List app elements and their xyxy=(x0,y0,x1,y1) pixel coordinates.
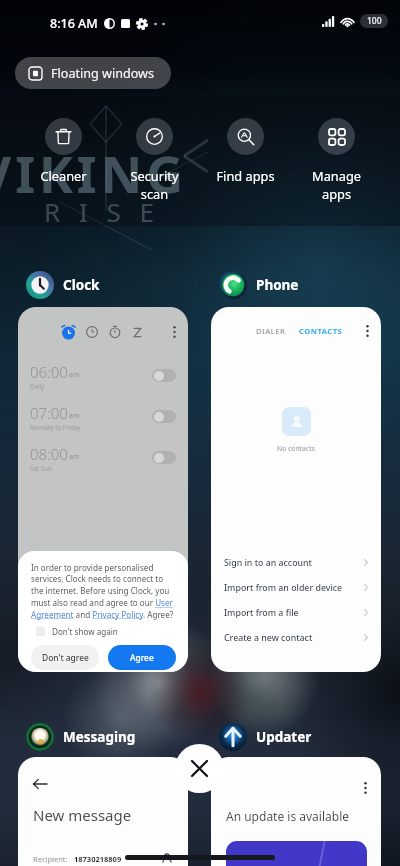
staticText: No contacts xyxy=(277,444,315,453)
button[interactable]: Clock xyxy=(18,270,100,300)
staticText: am xyxy=(69,452,80,462)
staticText: Find apps xyxy=(200,167,291,184)
staticText: Monday to Friday xyxy=(30,423,81,431)
staticText: Cleaner xyxy=(18,167,109,184)
button[interactable]: Sign in to an account xyxy=(211,550,381,575)
button[interactable]: Phone xyxy=(211,270,299,300)
staticText: CONTACTS xyxy=(299,326,343,336)
staticText: An update is available xyxy=(226,808,350,824)
button[interactable]: Import from an older device xyxy=(211,575,381,600)
staticText: 07:00 xyxy=(30,403,68,423)
staticText: Import from a file xyxy=(224,607,299,619)
button[interactable]: An update is available xyxy=(211,757,381,866)
staticText: 06:00 xyxy=(30,362,68,382)
staticText: New message xyxy=(33,805,132,825)
staticText: Daily xyxy=(30,382,45,390)
staticText: R I S E xyxy=(44,194,160,229)
button[interactable]: Security scan xyxy=(109,118,200,203)
staticText: Updater xyxy=(256,728,312,746)
button[interactable]: 06:00 xyxy=(18,307,188,672)
button[interactable]: Messaging xyxy=(18,722,136,752)
button[interactable]: Import from a file xyxy=(211,600,381,625)
staticText: Import from an older device xyxy=(224,582,343,594)
button[interactable]: DIALER xyxy=(211,307,381,672)
staticText: In order to provide personalised service… xyxy=(31,562,176,620)
staticText: VIKING xyxy=(0,138,188,207)
button[interactable]: Manage apps xyxy=(291,118,382,203)
staticText: Security scan xyxy=(109,167,200,203)
button[interactable]: Agree xyxy=(108,645,176,670)
staticText: Don't agree xyxy=(42,652,89,663)
staticText: 18730218809 xyxy=(74,854,122,864)
staticText: 08:00 xyxy=(30,444,68,464)
staticText: DIALER xyxy=(256,326,286,336)
button[interactable]: Clear all recent apps xyxy=(175,744,224,793)
staticText: Sign in to an account xyxy=(224,557,312,569)
staticText: Floating windows xyxy=(51,65,155,82)
button[interactable]: Floating windows xyxy=(15,57,171,89)
staticText: Agree xyxy=(130,652,154,663)
button[interactable]: New message xyxy=(18,757,188,866)
staticText: 100 xyxy=(367,15,382,27)
staticText: Messaging xyxy=(63,728,136,746)
staticText: 8:16 AM xyxy=(50,15,98,32)
button[interactable]: Find apps xyxy=(200,118,291,184)
button[interactable]: Cleaner xyxy=(18,118,109,184)
staticText: Recipient: xyxy=(33,854,68,864)
staticText: Clock xyxy=(63,276,100,294)
button[interactable]: Create a new contact xyxy=(211,625,381,650)
staticText: Create a new contact xyxy=(224,632,313,644)
button[interactable]: Updater xyxy=(211,722,312,752)
staticText: Phone xyxy=(256,276,299,294)
staticText: am xyxy=(69,370,80,380)
staticText: Sat Sun xyxy=(30,464,52,472)
staticText: Manage apps xyxy=(291,167,382,203)
staticText: Don't show again xyxy=(52,626,118,637)
staticText: am xyxy=(69,411,80,421)
button[interactable]: Don't agree xyxy=(31,645,99,670)
button[interactable]: Don't show again xyxy=(36,626,118,637)
